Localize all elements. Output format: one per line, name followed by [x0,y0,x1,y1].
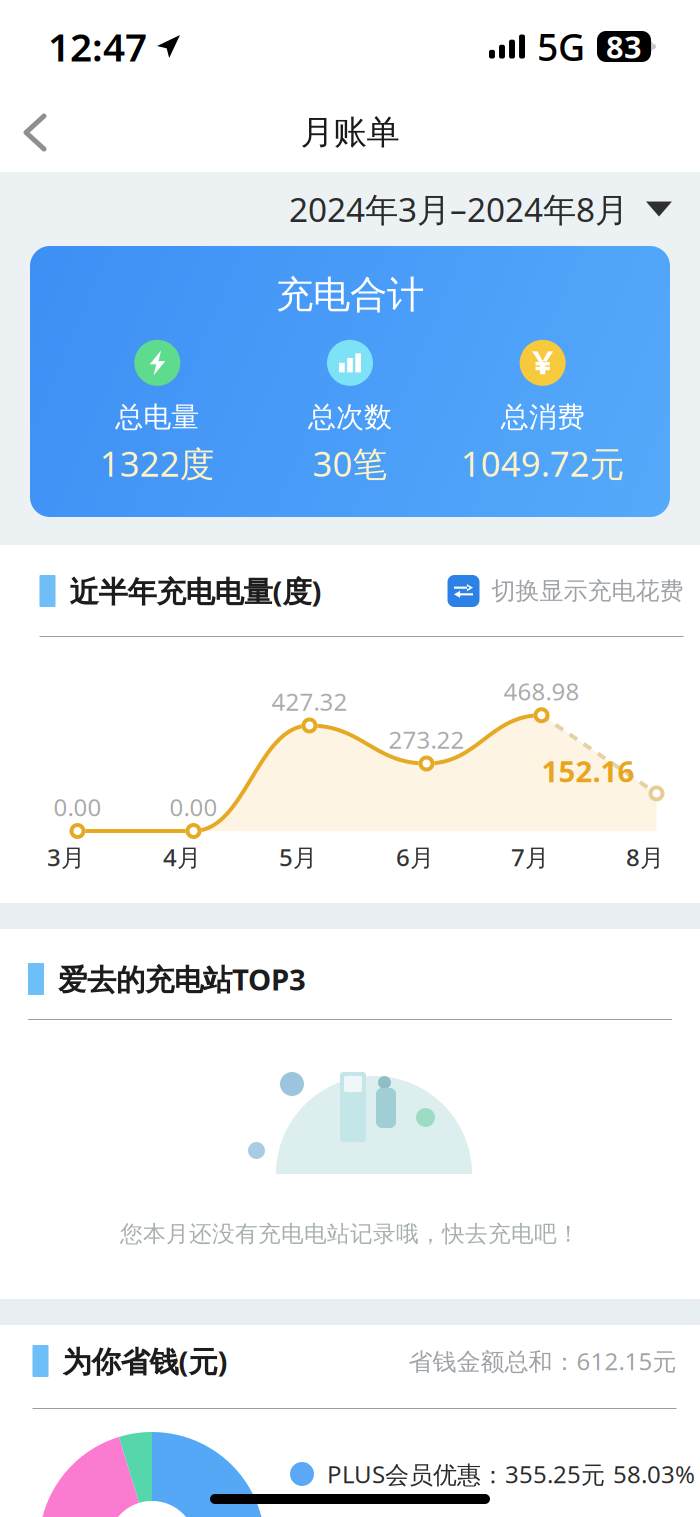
staticText: 6月 [396,841,434,873]
button[interactable]: Back [0,97,70,167]
staticText: 468.98 [503,675,579,707]
staticText: 充电合计 [276,272,424,318]
staticText: 0.00 [169,791,217,823]
staticText: 427.32 [271,685,347,717]
staticText: 0.00 [53,791,101,823]
staticText: 2024年3月–2024年8月 [289,187,628,231]
staticText: 4月 [163,841,201,873]
staticText: 1322度 [100,440,215,486]
staticText: 5G [537,22,585,71]
button[interactable]: 切换显示充电花费 [447,575,683,607]
staticText: 273.22 [388,723,464,755]
staticText: PLUS会员优惠：355.25元 [327,1458,605,1490]
staticText: 爱去的充电站TOP3 [58,959,306,998]
staticText: 总电量 [115,400,199,434]
staticText: 7月 [511,841,549,873]
staticText: 近半年充电电量(度) [69,571,321,610]
staticText: 3月 [47,841,85,873]
staticText: 总消费 [501,400,585,434]
staticText: 省钱金额总和：612.15元 [408,1345,676,1377]
staticText: 12:47 [48,21,147,72]
staticText: 5月 [279,841,317,873]
staticText: 58.03% [613,1458,695,1490]
staticText: 30笔 [312,440,387,486]
staticText: 83 [606,26,642,67]
button[interactable]: 2024年3月–2024年8月 [289,187,672,231]
staticText: 为你省钱(元) [62,1341,227,1380]
staticText: 您本月还没有充电电站记录哦，快去充电吧！ [120,1220,580,1248]
staticText: 1049.72元 [461,440,625,486]
staticText: 月账单 [300,112,399,153]
staticText: 切换显示充电花费 [491,576,683,606]
staticText: 总次数 [308,400,392,434]
staticText: 152.16 [541,751,634,790]
staticText: 8月 [626,841,664,873]
